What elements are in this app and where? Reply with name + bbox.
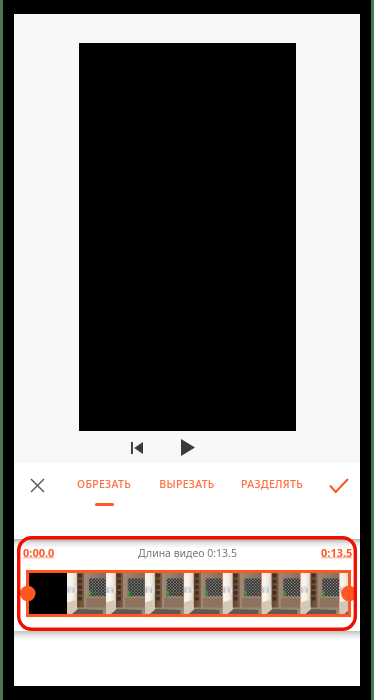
staticText: РАЗДЕЛЯТЬ bbox=[241, 477, 303, 491]
staticText: 0:00.0 bbox=[23, 545, 55, 560]
button[interactable]: Close bbox=[20, 468, 54, 502]
button[interactable]: Done bbox=[322, 468, 356, 502]
staticText: ОБРЕЗАТЬ bbox=[77, 477, 131, 491]
button[interactable]: ОБРЕЗАТЬ bbox=[56, 468, 152, 513]
button[interactable]: Previous bbox=[120, 431, 154, 465]
button[interactable]: Trim range bbox=[26, 570, 351, 617]
staticText: ВЫРЕЗАТЬ bbox=[159, 477, 215, 491]
staticText: 0:13.5 bbox=[321, 545, 353, 560]
button[interactable]: РАЗДЕЛЯТЬ bbox=[224, 468, 320, 513]
button[interactable]: Play bbox=[171, 430, 205, 464]
staticText: Длина видео 0:13.5 bbox=[138, 546, 237, 560]
button[interactable]: ВЫРЕЗАТЬ bbox=[139, 468, 235, 513]
